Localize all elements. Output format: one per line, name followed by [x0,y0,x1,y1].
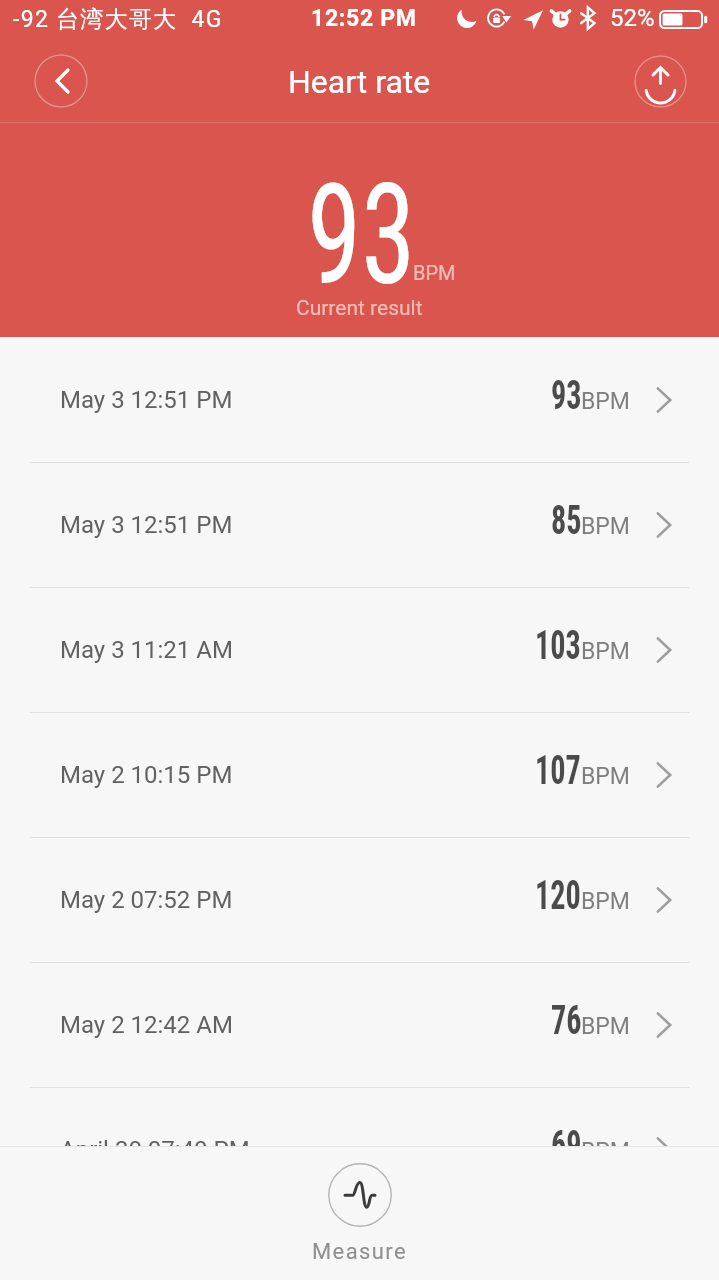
button[interactable]: Back [34,54,88,108]
staticText: May 2 12:42 AM [60,1011,233,1039]
staticText: BPM [581,763,630,790]
staticText: BPM [581,513,630,540]
staticText: May 2 07:52 PM [60,886,233,914]
staticText: 85 [551,496,582,544]
staticText: May 3 11:21 AM [60,636,233,664]
staticText: 76 [551,996,582,1044]
staticText: May 3 12:51 PM [60,386,233,414]
staticText: May 3 12:51 PM [60,511,233,539]
staticText: BPM [581,1013,630,1040]
staticText: 52% [610,4,655,32]
button[interactable]: May 3 11:21 AM [0,588,719,713]
button[interactable]: May 3 12:51 PM [0,463,719,588]
staticText: BPM [413,261,456,284]
button[interactable]: May 2 10:15 PM [0,713,719,838]
staticText: Heart rate [288,63,431,101]
staticText: 120 [535,871,581,919]
button[interactable]: Share [634,55,687,108]
staticText: 12:52 PM [311,5,417,32]
button[interactable]: April 30 07:40 PM [0,1088,719,1213]
staticText: Current result [296,296,423,321]
staticText: BPM [581,1138,630,1165]
button[interactable]: May 2 12:42 AM [0,963,719,1088]
staticText: 103 [535,621,581,669]
staticText: 69 [551,1121,582,1169]
staticText: April 30 07:40 PM [60,1136,250,1164]
staticText: BPM [581,638,630,665]
button[interactable]: May 2 07:52 PM [0,838,719,963]
staticText: 93 [307,153,416,317]
staticText: -92 台湾大哥大 4G [13,5,223,34]
staticText: Measure [312,1239,408,1265]
staticText: 93 [551,371,582,419]
button[interactable]: Measure [0,1163,719,1265]
button[interactable]: May 3 12:51 PM [0,338,719,463]
staticText: May 2 10:15 PM [60,761,233,789]
staticText: BPM [581,388,630,415]
staticText: 107 [535,746,581,794]
staticText: BPM [581,888,630,915]
